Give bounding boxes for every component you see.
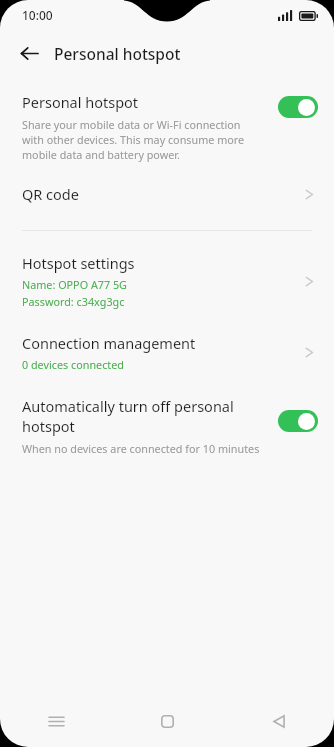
staticText: QR code xyxy=(22,184,305,204)
staticText: 0 devices connected xyxy=(22,357,124,372)
staticText: When no devices are connected for 10 min… xyxy=(22,441,260,456)
button[interactable]: Automatically turn off personal hotspot xyxy=(0,390,334,462)
staticText: Password: c34xg3gc xyxy=(22,294,125,309)
button[interactable]: Back xyxy=(223,695,334,747)
button[interactable]: Hotspot settings xyxy=(0,249,334,313)
staticText: Name: OPPO A77 5G xyxy=(22,277,127,292)
staticText: Share your mobile data or Wi-Fi connecti… xyxy=(22,117,264,162)
staticText: Connection management xyxy=(22,333,196,353)
button[interactable]: Connection management xyxy=(0,329,334,376)
staticText: Personal hotspot xyxy=(54,43,181,64)
button[interactable]: Toggle xyxy=(278,96,318,118)
staticText: Personal hotspot xyxy=(22,92,139,112)
button[interactable]: Personal hotspot xyxy=(0,84,334,172)
button[interactable]: Home xyxy=(112,695,223,747)
staticText: 10:00 xyxy=(22,7,53,23)
staticText: Hotspot settings xyxy=(22,253,135,273)
staticText: Automatically turn off personal hotspot xyxy=(22,396,264,436)
button[interactable]: Toggle xyxy=(278,410,318,432)
button[interactable]: Back xyxy=(12,36,46,70)
button[interactable]: Recent apps xyxy=(0,695,112,747)
button[interactable]: QR code xyxy=(0,172,334,216)
